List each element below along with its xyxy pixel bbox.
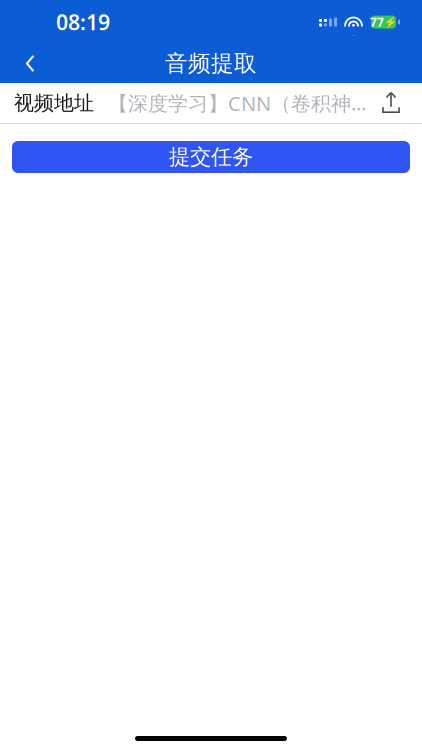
button[interactable]: 提交任务 — [12, 141, 410, 173]
staticText: 音频提取 — [165, 50, 257, 77]
staticText: 【深度学习】CNN（卷积神经网... — [108, 90, 366, 116]
staticText: 77 — [370, 14, 384, 30]
staticText: 08:19 — [56, 8, 110, 36]
button[interactable]: Upload — [374, 86, 408, 120]
staticText: ⚡ — [384, 16, 397, 28]
button[interactable]: Back — [8, 44, 52, 83]
staticText: 提交任务 — [169, 144, 253, 170]
staticText: 视频地址 — [14, 91, 94, 115]
